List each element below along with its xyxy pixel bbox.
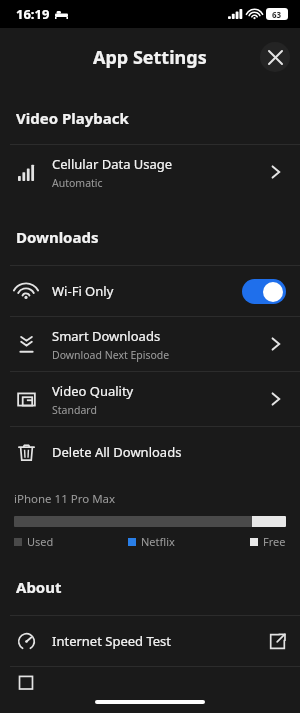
button[interactable]: Internet Speed Test	[0, 616, 300, 666]
staticText: Downloads	[16, 227, 99, 247]
button[interactable]: Cellular Data Usage	[0, 145, 300, 199]
staticText: Free	[263, 534, 286, 549]
other: Open	[266, 334, 286, 354]
button[interactable]: Close	[260, 42, 290, 72]
other: Open external link	[269, 633, 286, 650]
staticText: Internet Speed Test	[52, 632, 172, 650]
button[interactable]: Wi-Fi Only	[0, 266, 300, 316]
staticText: 63	[272, 9, 282, 20]
staticText: Netflix	[141, 534, 175, 549]
staticText: Automatic	[52, 176, 103, 190]
staticText: 16:19	[16, 5, 50, 23]
other: Open	[266, 162, 286, 182]
staticText: iPhone 11 Pro Max	[14, 491, 116, 507]
staticText: Video Playback	[16, 108, 129, 128]
button[interactable]: Wi-Fi Only toggle	[242, 279, 286, 304]
staticText: Delete All Downloads	[52, 443, 182, 461]
staticText: About	[16, 577, 62, 597]
staticText: Used	[27, 534, 54, 549]
staticText: Smart Downloads	[52, 327, 161, 345]
staticText: Wi-Fi Only	[52, 282, 114, 300]
staticText: Standard	[52, 403, 97, 417]
staticText: Video Quality	[52, 382, 134, 400]
button[interactable]: Delete All Downloads	[0, 427, 300, 477]
staticText: App Settings	[93, 45, 207, 70]
staticText: Download Next Episode	[52, 348, 170, 362]
button[interactable]: Smart Downloads	[0, 317, 300, 371]
button[interactable]: App Settings	[85, 41, 215, 74]
staticText: Cellular Data Usage	[52, 155, 173, 173]
button[interactable]	[0, 667, 300, 693]
button[interactable]: Video Quality	[0, 372, 300, 426]
other: Open	[266, 389, 286, 409]
